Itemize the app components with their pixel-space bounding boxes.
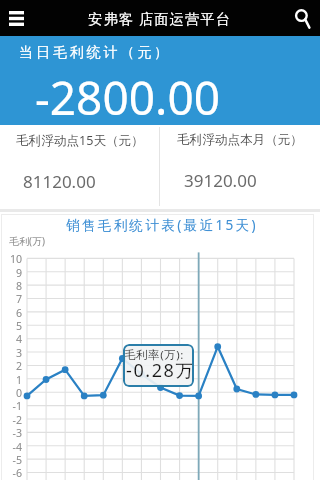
- staticText: 毛利(万): [9, 234, 45, 248]
- staticText: 0: [0, 386, 22, 400]
- staticText: 毛利浮动点15天（元）: [16, 132, 144, 149]
- button[interactable]: Menu: [1, 3, 31, 33]
- staticText: 毛利浮动点本月（元）: [177, 132, 303, 148]
- staticText: 4: [0, 332, 22, 346]
- button[interactable]: Search: [289, 4, 317, 32]
- staticText: -0.28万: [126, 358, 194, 383]
- button[interactable]: 当日毛利统计（元）: [0, 36, 320, 125]
- staticText: -2: [0, 413, 22, 427]
- staticText: 毛利率(万):: [124, 347, 184, 363]
- staticText: 9: [0, 266, 22, 280]
- staticText: 10: [0, 252, 22, 266]
- staticText: 当日毛利统计（元）: [19, 43, 171, 61]
- staticText: -1: [0, 399, 22, 413]
- staticText: 8: [0, 279, 22, 293]
- staticText: 81120.00: [23, 170, 96, 193]
- staticText: 6: [0, 306, 22, 320]
- staticText: 39120.00: [184, 169, 257, 192]
- staticText: -5: [0, 453, 22, 467]
- button[interactable]: 毛利浮动点本月（元）: [160, 125, 320, 208]
- staticText: 5: [0, 319, 22, 333]
- staticText: 3: [0, 346, 22, 360]
- staticText: -6: [0, 466, 22, 480]
- staticText: -2800.00: [35, 66, 221, 129]
- staticText: -4: [0, 440, 22, 454]
- staticText: 7: [0, 292, 22, 306]
- staticText: 安弗客 店面运营平台: [88, 9, 232, 28]
- staticText: 2: [0, 359, 22, 373]
- button[interactable]: 毛利浮动点15天（元）: [0, 125, 159, 208]
- staticText: -3: [0, 426, 22, 440]
- staticText: 销售毛利统计表(最近15天): [66, 215, 258, 234]
- staticText: 1: [0, 373, 22, 387]
